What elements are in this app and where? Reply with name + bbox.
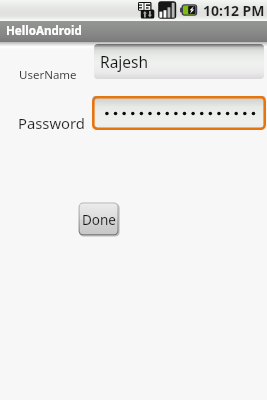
staticText: Rajesh xyxy=(100,51,149,72)
staticText: Done xyxy=(82,211,116,229)
button[interactable]: UserName field xyxy=(94,44,264,79)
staticText: HelloAndroid xyxy=(6,23,82,39)
staticText: 10:12 PM xyxy=(203,1,265,20)
button[interactable]: Done xyxy=(78,202,120,237)
button[interactable]: HelloAndroid xyxy=(0,21,267,42)
staticText: Password xyxy=(18,113,85,133)
staticText: UserName xyxy=(19,67,77,83)
button[interactable]: Password field xyxy=(92,96,266,130)
